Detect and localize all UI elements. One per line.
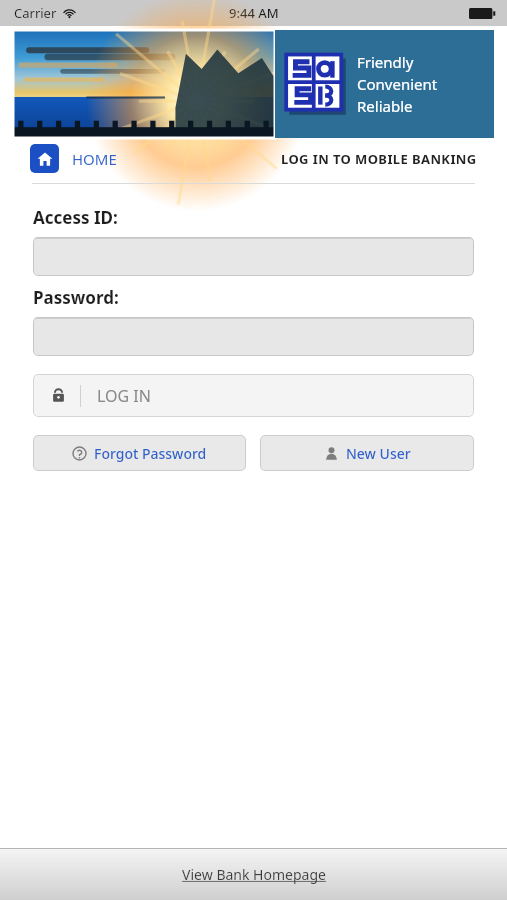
staticText: HOME [72,149,117,169]
staticText: Friendly [357,52,414,72]
staticText: Password: [33,286,119,309]
staticText: 9:44 AM [229,4,279,22]
button[interactable]: Home [30,144,123,173]
staticText: Access ID: [33,206,118,229]
button[interactable] [33,237,474,276]
staticText: LOG IN [97,385,151,407]
other: Home [30,144,59,173]
button[interactable]: New User [260,435,474,471]
button[interactable] [33,317,474,356]
staticText: Reliable [357,96,413,116]
staticText: New User [346,444,411,463]
staticText: Forgot Password [94,444,207,463]
staticText: View Bank Homepage [182,865,326,884]
button[interactable]: LOG IN [33,374,474,417]
staticText: Convenient [357,74,438,94]
button[interactable]: View Bank Homepage [0,849,507,900]
button[interactable]: Forgot Password [33,435,246,471]
staticText: Carrier [14,4,57,22]
staticText: LOG IN TO MOBILE BANKING [281,150,477,168]
